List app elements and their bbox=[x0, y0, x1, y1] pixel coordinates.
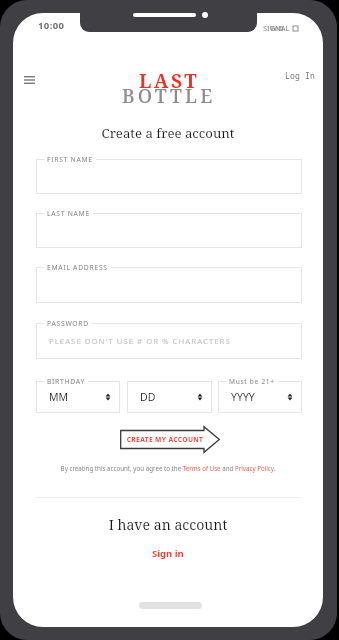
button[interactable]: LAST NAME bbox=[36, 208, 302, 248]
staticText: LAST bbox=[139, 68, 200, 94]
staticText: BOTTLE bbox=[122, 83, 216, 109]
staticText: 10:00 bbox=[38, 19, 65, 32]
staticText: Wifi bbox=[270, 23, 284, 33]
staticText: YYYY bbox=[231, 390, 287, 404]
staticText: Must be 21+ bbox=[229, 377, 275, 386]
staticText: I have an account bbox=[13, 515, 323, 534]
button[interactable]: Log In bbox=[279, 64, 321, 87]
button[interactable]: FIRST NAME bbox=[36, 154, 302, 194]
button[interactable]: CREATE MY ACCOUNT bbox=[120, 426, 220, 453]
staticText: Sign in bbox=[152, 547, 184, 560]
staticText: MM bbox=[49, 390, 105, 404]
staticText: Log In bbox=[285, 70, 315, 81]
staticText: Create a free account bbox=[13, 124, 323, 142]
staticText: PASSWORD bbox=[47, 319, 89, 328]
staticText: BIRTHDAY bbox=[47, 377, 85, 386]
button[interactable]: BIRTHDAY bbox=[36, 376, 120, 413]
staticText: DD bbox=[140, 390, 197, 404]
staticText: LAST NAME bbox=[47, 209, 90, 218]
button[interactable]: DD bbox=[127, 376, 212, 413]
staticText: EMAIL ADDRESS bbox=[47, 263, 108, 272]
button[interactable]: Must be 21+ bbox=[218, 376, 302, 413]
staticText: SIGNAL bbox=[263, 23, 290, 33]
staticText: PLEASE DON'T USE # OR % CHARACTERS bbox=[49, 336, 293, 347]
button[interactable]: Menu bbox=[17, 68, 41, 92]
button[interactable]: EMAIL ADDRESS bbox=[36, 262, 302, 303]
staticText: CREATE MY ACCOUNT bbox=[126, 435, 204, 444]
staticText: By creating this account, you agree to t… bbox=[13, 464, 323, 472]
button[interactable]: Sign in bbox=[146, 541, 190, 566]
staticText: FIRST NAME bbox=[47, 155, 93, 164]
button[interactable]: PASSWORD bbox=[36, 318, 302, 359]
